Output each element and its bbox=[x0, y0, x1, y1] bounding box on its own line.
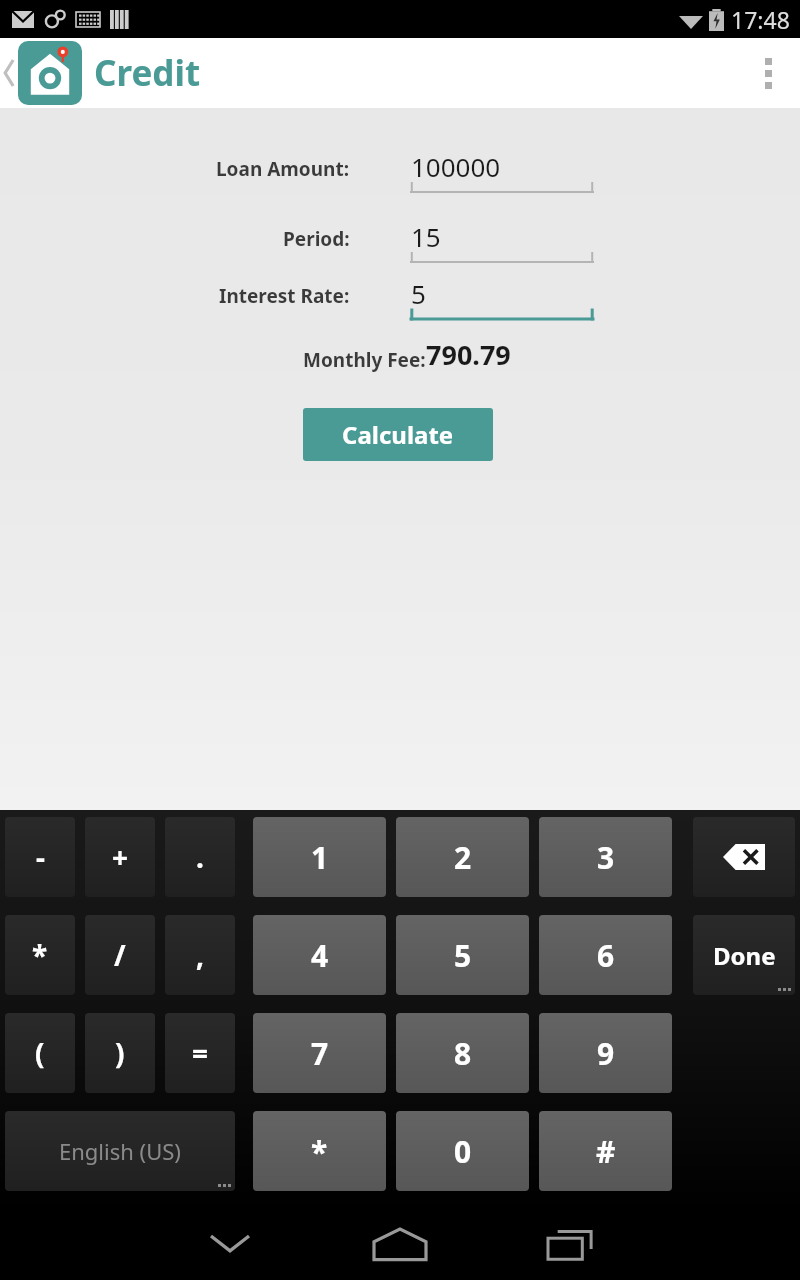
button[interactable]: English (US) bbox=[5, 1111, 235, 1191]
staticText: * bbox=[32, 936, 48, 974]
button[interactable]: - bbox=[5, 817, 75, 897]
staticText: + bbox=[112, 838, 129, 876]
button[interactable]: . bbox=[165, 817, 235, 897]
staticText: 3 bbox=[597, 837, 615, 878]
button[interactable]: Done bbox=[693, 915, 795, 995]
staticText: Credit bbox=[94, 49, 201, 97]
button[interactable]: # bbox=[539, 1111, 672, 1191]
button[interactable]: + bbox=[85, 817, 155, 897]
button[interactable]: Home bbox=[340, 1210, 460, 1280]
staticText: 100000 bbox=[411, 149, 501, 184]
button[interactable]: Calculate bbox=[303, 408, 493, 461]
staticText: * bbox=[311, 1131, 328, 1172]
staticText: English (US) bbox=[59, 1136, 181, 1166]
staticText: ) bbox=[115, 1034, 125, 1072]
staticText: / bbox=[114, 936, 126, 974]
staticText: Interest Rate: bbox=[219, 283, 350, 309]
staticText: 7 bbox=[311, 1033, 329, 1074]
button[interactable]: 5 bbox=[355, 275, 595, 323]
button[interactable]: 100000 bbox=[355, 148, 595, 196]
staticText: # bbox=[596, 1131, 616, 1172]
staticText: 790.79 bbox=[426, 336, 511, 373]
staticText: . bbox=[196, 838, 204, 876]
button[interactable]: , bbox=[165, 915, 235, 995]
button[interactable]: Hide keyboard bbox=[170, 1210, 290, 1280]
staticText: Monthly Fee: bbox=[303, 347, 426, 373]
staticText: 6 bbox=[597, 935, 615, 976]
staticText: , bbox=[196, 936, 204, 974]
button[interactable]: 1 bbox=[253, 817, 386, 897]
button[interactable]: 4 bbox=[253, 915, 386, 995]
staticText: Loan Amount: bbox=[216, 156, 350, 182]
staticText: Done bbox=[713, 939, 776, 972]
staticText: Calculate bbox=[342, 418, 454, 451]
button[interactable]: = bbox=[165, 1013, 235, 1093]
button[interactable]: * bbox=[5, 915, 75, 995]
staticText: 5 bbox=[411, 276, 426, 311]
button[interactable]: * bbox=[253, 1111, 386, 1191]
button[interactable]: 6 bbox=[539, 915, 672, 995]
button[interactable]: More options bbox=[736, 38, 800, 108]
staticText: 4 bbox=[311, 935, 329, 976]
button[interactable]: 9 bbox=[539, 1013, 672, 1093]
button[interactable]: 3 bbox=[539, 817, 672, 897]
button[interactable]: 7 bbox=[253, 1013, 386, 1093]
staticText: 9 bbox=[597, 1033, 615, 1074]
staticText: 5 bbox=[454, 935, 472, 976]
button[interactable]: 8 bbox=[396, 1013, 529, 1093]
button[interactable]: 15 bbox=[355, 218, 595, 266]
staticText: ( bbox=[35, 1034, 45, 1072]
staticText: Period: bbox=[283, 226, 350, 252]
button[interactable]: 5 bbox=[396, 915, 529, 995]
button[interactable]: 2 bbox=[396, 817, 529, 897]
button[interactable]: Back bbox=[0, 38, 18, 108]
staticText: 8 bbox=[454, 1033, 472, 1074]
staticText: 0 bbox=[454, 1131, 472, 1172]
staticText: = bbox=[192, 1034, 209, 1072]
button[interactable]: ) bbox=[85, 1013, 155, 1093]
button[interactable]: Backspace bbox=[693, 817, 795, 897]
staticText: 15 bbox=[411, 219, 441, 254]
staticText: 2 bbox=[454, 837, 472, 878]
button[interactable]: / bbox=[85, 915, 155, 995]
staticText: 1 bbox=[311, 837, 329, 878]
button[interactable]: 0 bbox=[396, 1111, 529, 1191]
staticText: 17:48 bbox=[731, 4, 790, 35]
button[interactable]: ( bbox=[5, 1013, 75, 1093]
button[interactable]: Recent apps bbox=[510, 1210, 630, 1280]
staticText: - bbox=[36, 838, 45, 876]
